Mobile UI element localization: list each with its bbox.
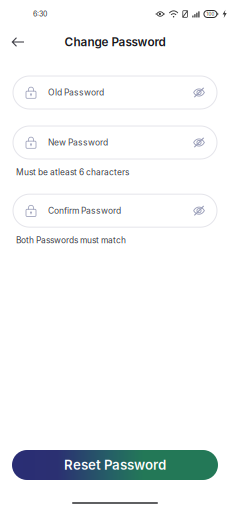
staticText: 100 [206,11,214,17]
staticText: Change Password [64,35,165,49]
staticText: Must be atleast 6 characters [16,167,129,177]
button[interactable]: Old Password [13,76,217,109]
button[interactable]: Back [4,29,32,55]
staticText: 6:30 [33,10,47,18]
button[interactable]: Reset Password [12,450,218,480]
staticText: Confirm Password [48,205,121,216]
staticText: Old Password [48,87,104,98]
button[interactable]: Confirm Password [13,194,217,227]
staticText: New Password [48,137,108,148]
staticText: Reset Password [64,457,166,473]
button[interactable]: New Password [13,126,217,159]
staticText: Both Passwords must match [16,235,126,245]
